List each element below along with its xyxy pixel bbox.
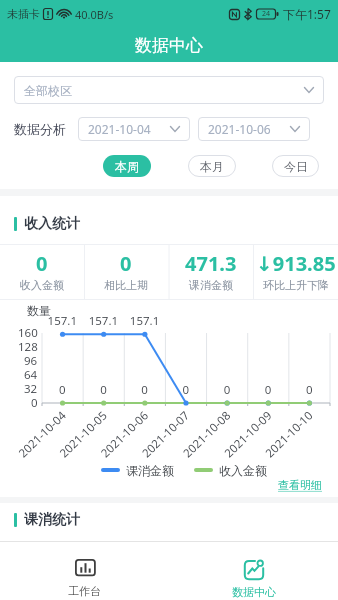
staticText: 0: [120, 250, 132, 277]
staticText: 2021-10-06: [208, 121, 271, 137]
staticText: 环比上升下降: [263, 278, 329, 292]
staticText: 0: [36, 250, 48, 277]
staticText: ↓913.85: [256, 250, 336, 277]
staticText: 收入金额: [20, 278, 64, 292]
staticText: 本周: [115, 159, 139, 174]
staticText: 数据中心: [135, 35, 203, 56]
staticText: 数据中心: [232, 585, 276, 599]
button[interactable]: 本周: [103, 155, 151, 177]
staticText: 40.0B/s: [75, 7, 114, 22]
staticText: 数据分析: [14, 121, 66, 137]
staticText: 471.3: [185, 250, 237, 277]
staticText: 全部校区: [24, 83, 72, 98]
staticText: 本月: [200, 159, 224, 174]
button[interactable]: 查看明细: [278, 478, 322, 492]
staticText: 未插卡: [7, 7, 40, 21]
button[interactable]: 工作台: [0, 542, 169, 600]
staticText: 收入统计: [24, 215, 80, 233]
staticText: 今日: [284, 159, 308, 174]
button[interactable]: 数据中心: [169, 542, 338, 600]
button[interactable]: 2021-10-04: [78, 117, 190, 141]
button[interactable]: 本月: [188, 155, 236, 177]
staticText: 课消统计: [24, 511, 80, 529]
staticText: 24: [262, 9, 271, 19]
staticText: 下午1:57: [283, 6, 331, 22]
staticText: 2021-10-04: [88, 121, 151, 137]
staticText: 相比上期: [104, 278, 148, 292]
staticText: 收入金额: [219, 463, 267, 478]
button[interactable]: 2021-10-06: [198, 117, 310, 141]
staticText: 课消金额: [126, 463, 174, 478]
staticText: 工作台: [68, 584, 101, 598]
staticText: 课消金额: [189, 278, 233, 292]
button[interactable]: 今日: [272, 155, 319, 177]
button[interactable]: 全部校区: [14, 76, 324, 104]
